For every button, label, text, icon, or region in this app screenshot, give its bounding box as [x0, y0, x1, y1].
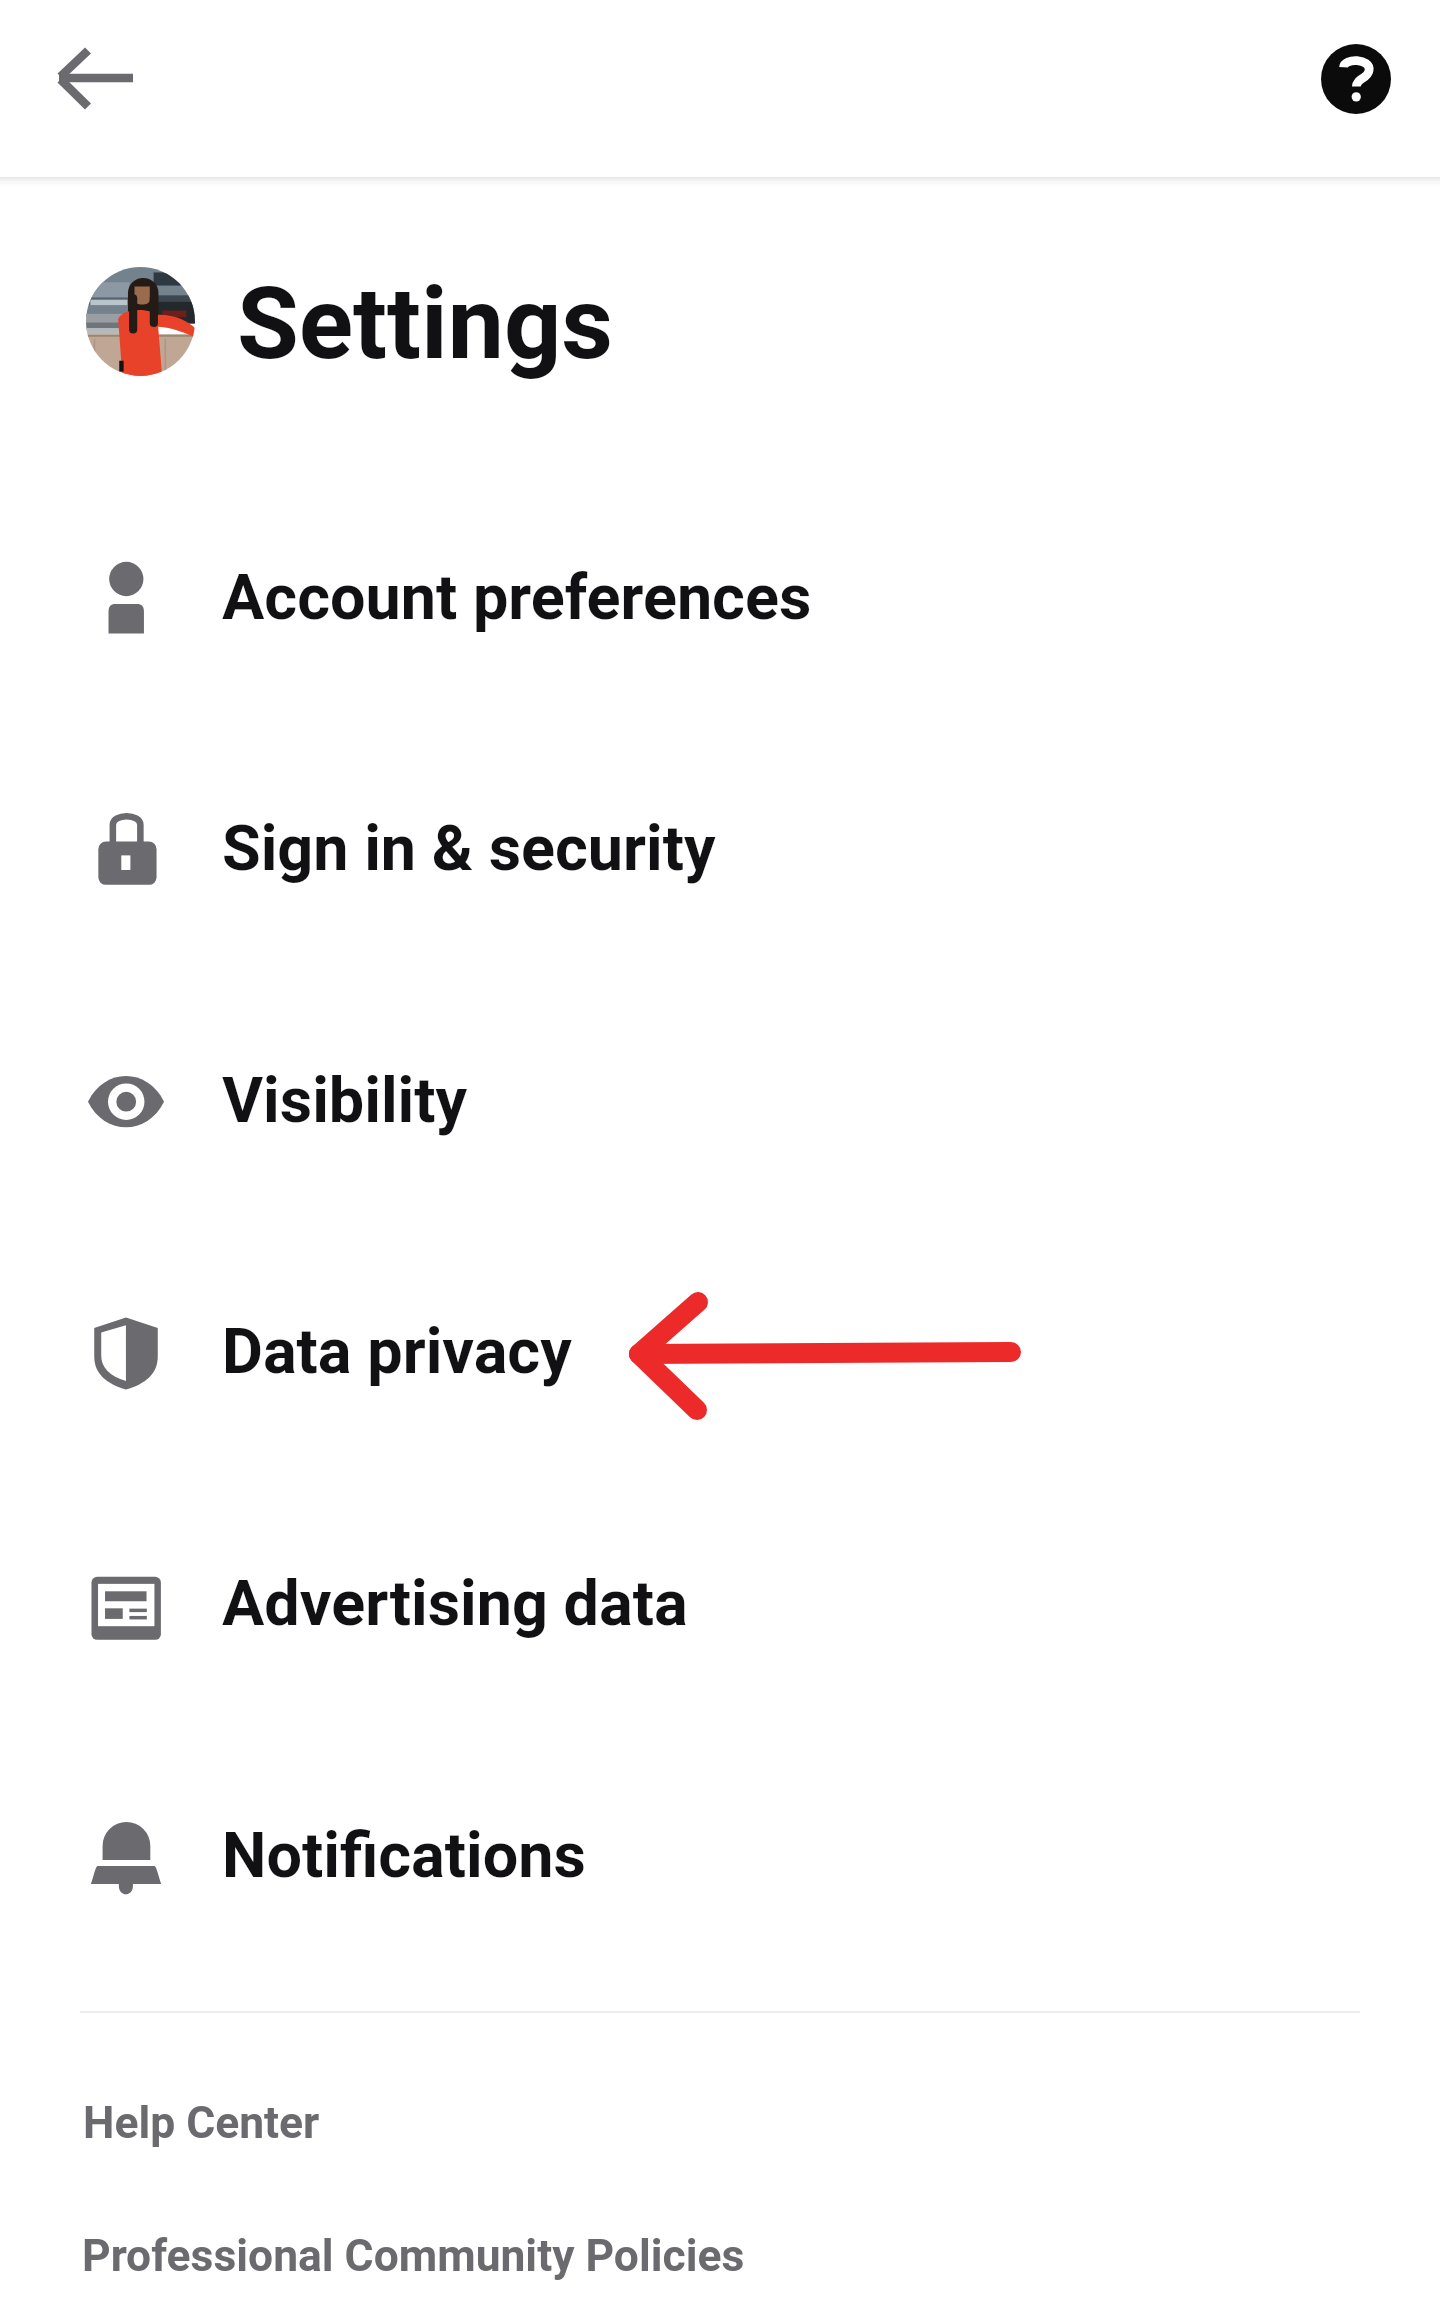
- staticText: Settings: [237, 264, 614, 383]
- staticText: Professional Community Policies: [82, 2230, 745, 2282]
- staticText: Help Center: [83, 2097, 320, 2149]
- staticText: Advertising data: [222, 1566, 688, 1640]
- button[interactable]: Notifications: [0, 1729, 1440, 1981]
- button[interactable]: Visibility: [0, 974, 1440, 1226]
- button[interactable]: Advertising data: [0, 1477, 1440, 1729]
- staticText: Account preferences: [222, 560, 812, 634]
- button[interactable]: Account preferences: [0, 471, 1440, 723]
- button[interactable]: Back: [14, 18, 144, 148]
- staticText: Notifications: [222, 1818, 586, 1892]
- button[interactable]: Help Center: [60, 2078, 380, 2168]
- button[interactable]: Sign in & security: [0, 722, 1440, 974]
- button[interactable]: Help: [1286, 9, 1426, 149]
- button[interactable]: Profile photo: [86, 267, 195, 376]
- button[interactable]: Data privacy: [0, 1225, 1440, 1477]
- staticText: Data privacy: [222, 1314, 572, 1388]
- staticText: Sign in & security: [222, 811, 716, 885]
- staticText: Visibility: [222, 1063, 468, 1137]
- button[interactable]: Professional Community Policies: [60, 2211, 780, 2300]
